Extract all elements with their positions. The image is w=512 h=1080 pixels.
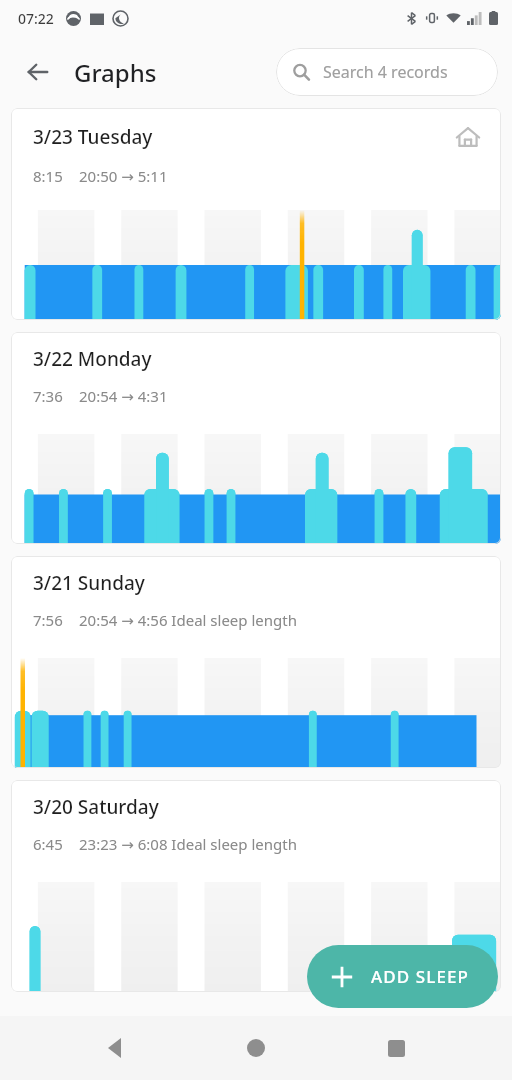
button[interactable]: Home: [232, 1024, 280, 1072]
button[interactable]: 3/20 Saturday: [11, 780, 501, 992]
staticText: ADD SLEEP: [371, 965, 470, 988]
button[interactable]: Home location: [453, 122, 483, 152]
button[interactable]: Search 4 records: [276, 48, 498, 96]
button[interactable]: Recent apps: [372, 1024, 420, 1072]
staticText: 3/20 Saturday: [33, 794, 159, 820]
staticText: 3/21 Sunday: [33, 570, 145, 596]
button[interactable]: 3/22 Monday: [11, 332, 501, 544]
staticText: 20:54 → 4:31: [79, 386, 168, 406]
staticText: 07:22: [18, 9, 54, 28]
staticText: 6:45: [33, 834, 63, 854]
staticText: 20:50 → 5:11: [79, 166, 168, 186]
staticText: 23:23 → 6:08 Ideal sleep length: [79, 834, 297, 854]
staticText: 8:15: [33, 166, 63, 186]
button[interactable]: 3/21 Sunday: [11, 556, 501, 768]
staticText: 3/23 Tuesday: [33, 124, 153, 150]
staticText: 7:56: [33, 610, 63, 630]
staticText: 20:54 → 4:56 Ideal sleep length: [79, 610, 297, 630]
button[interactable]: Back: [16, 50, 60, 94]
staticText: Search 4 records: [323, 61, 448, 83]
button[interactable]: 3/23 Tuesday: [11, 108, 501, 320]
staticText: 3/22 Monday: [33, 346, 152, 372]
staticText: 7:36: [33, 386, 63, 406]
button[interactable]: Back: [92, 1024, 140, 1072]
button[interactable]: ADD SLEEP: [307, 945, 498, 1008]
staticText: Graphs: [74, 56, 157, 89]
